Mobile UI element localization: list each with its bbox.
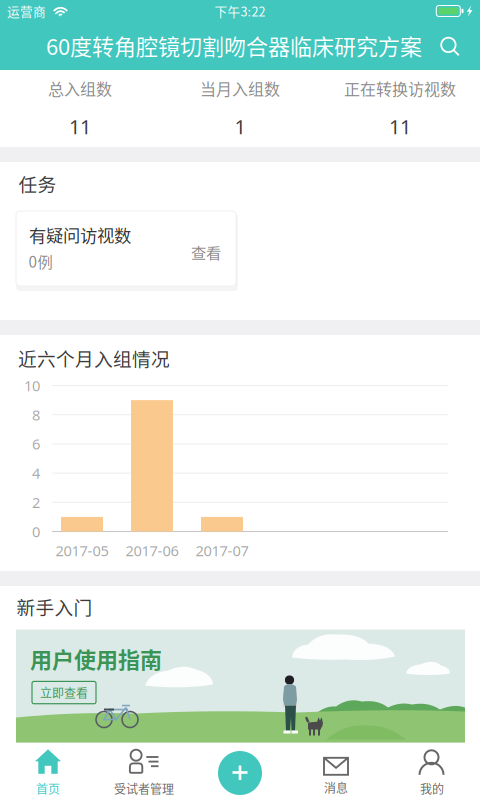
staticText: 11 [69, 113, 91, 140]
staticText: 近六个月入组情况 [18, 344, 170, 371]
staticText: 运营商 [7, 2, 46, 20]
staticText: 查看 [191, 241, 221, 263]
button[interactable]: 新建 [192, 746, 288, 800]
button[interactable]: 受试者管理 [96, 746, 192, 800]
staticText: 11 [389, 113, 411, 140]
staticText: 我的 [420, 780, 444, 797]
staticText: 10 [24, 375, 40, 395]
staticText: 消息 [324, 779, 348, 796]
staticText: 立即查看 [40, 684, 88, 701]
button[interactable]: 用户使用指南 [16, 629, 465, 742]
staticText: 8 [32, 405, 40, 425]
staticText: 受试者管理 [114, 780, 174, 797]
staticText: 2 [32, 492, 40, 512]
staticText: 用户使用指南 [30, 642, 162, 674]
staticText: 首页 [36, 780, 60, 797]
staticText: 6 [32, 434, 40, 454]
staticText: 0 [32, 521, 40, 541]
staticText: 2017-05 [55, 540, 108, 560]
button[interactable]: 我的 [384, 746, 480, 800]
staticText: 1 [234, 113, 245, 140]
staticText: 任务 [18, 170, 56, 197]
staticText: 总入组数 [48, 77, 112, 100]
staticText: 当月入组数 [200, 77, 280, 100]
button[interactable]: 搜索 [432, 26, 468, 66]
staticText: 2017-07 [195, 540, 248, 560]
staticText: 有疑问访视数 [29, 222, 131, 247]
staticText: 下午3:22 [214, 2, 265, 20]
staticText: 2017-06 [125, 540, 178, 560]
button[interactable]: 消息 [288, 746, 384, 800]
staticText: 正在转换访视数 [344, 77, 456, 100]
staticText: 4 [32, 463, 40, 483]
staticText: 新手入门 [16, 593, 92, 620]
button[interactable]: 有疑问访视数 [16, 211, 238, 291]
button[interactable]: 首页 [0, 746, 96, 800]
staticText: 60度转角腔镜切割吻合器临床研究方案 [46, 29, 422, 61]
staticText: 0例 [28, 250, 52, 272]
